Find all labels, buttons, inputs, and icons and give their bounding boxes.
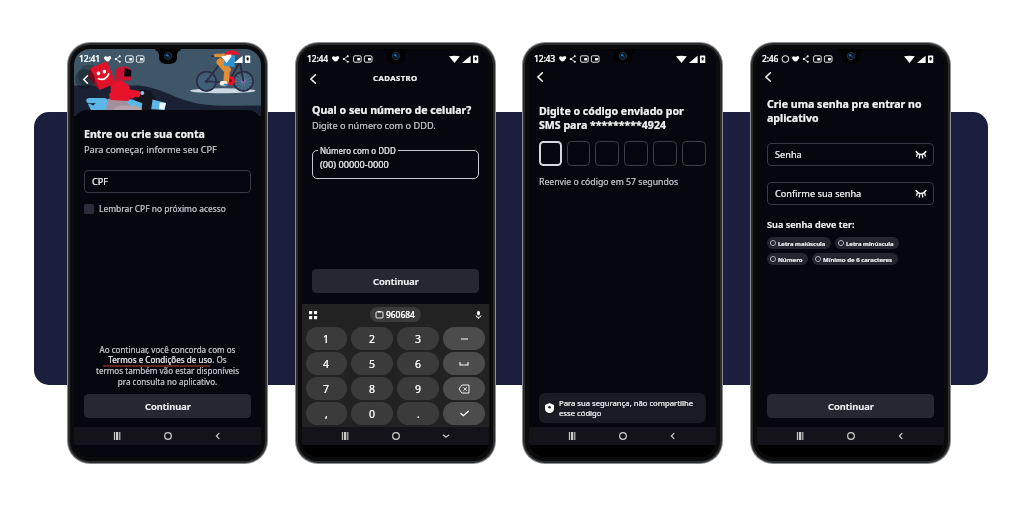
staticText: 7 (323, 382, 330, 396)
staticText: 12:41 (79, 53, 101, 65)
button[interactable]: 2 (351, 327, 393, 350)
button[interactable]: Letra maiúscula (767, 237, 831, 249)
button[interactable]: Home (615, 428, 631, 444)
staticText: Continuar (145, 400, 191, 413)
button[interactable]: Home (160, 428, 176, 444)
button[interactable]: 3 (397, 327, 439, 350)
button[interactable]: CPF (84, 170, 251, 193)
button[interactable]: 6 (397, 352, 439, 375)
staticText: CPF (92, 175, 109, 188)
button[interactable]: 1 (306, 327, 347, 350)
button[interactable]: Senha (767, 143, 934, 166)
staticText: 3 (415, 332, 422, 346)
staticText: Qual o seu número de celular? (312, 103, 472, 117)
button[interactable]: 4 (306, 352, 347, 375)
button[interactable]: Back (304, 70, 322, 88)
button[interactable]: Para sua segurança, não compartilhe esse… (539, 393, 706, 423)
button[interactable]: 9 (397, 377, 439, 400)
button[interactable]: Back (210, 428, 226, 444)
button[interactable]: , (306, 402, 347, 425)
button[interactable] (595, 141, 619, 166)
button[interactable] (312, 150, 479, 179)
staticText: Digite o código enviado por SMS para ***… (539, 104, 706, 132)
staticText: Crie uma senha pra entrar no aplicativo (767, 97, 934, 125)
button[interactable]: Recents (792, 428, 808, 444)
button[interactable]: Back (75, 69, 95, 89)
staticText: Senha (775, 148, 802, 161)
button[interactable] (539, 141, 562, 166)
staticText: CADASTRO (373, 73, 418, 84)
staticText: 1 (323, 332, 330, 346)
button[interactable] (443, 352, 485, 375)
button[interactable]: Home (388, 428, 404, 444)
staticText: (00) 00000-0000 (320, 158, 389, 171)
button[interactable] (443, 327, 485, 350)
staticText: 9 (415, 382, 422, 396)
staticText: Ao continuar, você concorda com os Termo… (84, 344, 251, 388)
button[interactable]: 960684 (376, 309, 415, 320)
staticText: Para sua segurança, não compartilhe esse… (559, 398, 700, 418)
staticText: Confirme sua senha (775, 187, 862, 200)
staticText: , (325, 407, 328, 421)
staticText: Número (778, 255, 803, 263)
staticText: Digite o número com o DDD. (312, 119, 436, 132)
button[interactable]: Back (665, 428, 681, 444)
button[interactable] (567, 141, 590, 166)
staticText: Sua senha deve ter: (767, 218, 855, 231)
staticText: Mínimo de 6 caracteres (823, 255, 893, 263)
button[interactable]: 8 (351, 377, 393, 400)
button[interactable]: Recents (564, 428, 580, 444)
button[interactable]: Continuar (767, 394, 934, 418)
button[interactable] (443, 402, 485, 425)
button[interactable]: Continuar (84, 394, 251, 418)
button[interactable]: Recents (337, 428, 353, 444)
staticText: Letra maiúscula (778, 239, 826, 247)
button[interactable]: Recents (109, 428, 125, 444)
button[interactable]: Home (843, 428, 859, 444)
button[interactable] (653, 141, 677, 166)
staticText: Reenvie o código em 57 segundos (539, 176, 679, 188)
staticText: Número com o DDD (320, 145, 396, 156)
button[interactable]: Back (759, 68, 777, 86)
staticText: Continuar (828, 400, 874, 413)
button[interactable]: Continuar (312, 269, 479, 293)
staticText: Continuar (373, 275, 419, 288)
button[interactable] (682, 141, 706, 166)
button[interactable]: Número (767, 253, 808, 265)
button[interactable]: Voice input (472, 309, 484, 321)
button[interactable]: Confirme sua senha (767, 182, 934, 205)
button[interactable]: . (397, 402, 439, 425)
button[interactable]: 0 (351, 402, 393, 425)
button[interactable]: 7 (306, 377, 347, 400)
staticText: 2 (369, 332, 376, 346)
staticText: Para começar, informe seu CPF (84, 143, 217, 156)
staticText: 5 (369, 357, 376, 371)
staticText: Lembrar CPF no próximo acesso (99, 203, 226, 214)
staticText: Letra minúscula (846, 239, 894, 247)
staticText: 12:43 (534, 53, 556, 65)
button[interactable]: Letra minúscula (835, 237, 899, 249)
button[interactable]: Switch keyboard (307, 309, 319, 321)
button[interactable]: Back (438, 428, 454, 444)
staticText: 4 (323, 357, 330, 371)
staticText: 960684 (386, 309, 415, 320)
button[interactable]: Back (531, 68, 549, 86)
button[interactable] (624, 141, 648, 166)
staticText: 8 (369, 382, 376, 396)
button[interactable]: Lembrar CPF no próximo acesso (84, 202, 226, 215)
staticText: Entre ou crie sua conta (84, 127, 205, 141)
staticText: 0 (369, 407, 376, 421)
button[interactable]: Back (893, 428, 909, 444)
staticText: 12:44 (307, 53, 329, 65)
staticText: . (417, 407, 420, 421)
button[interactable]: Mínimo de 6 caracteres (812, 253, 898, 265)
staticText: 2:46 (762, 53, 779, 65)
staticText: 6 (415, 357, 422, 371)
button[interactable]: 5 (351, 352, 393, 375)
button[interactable] (443, 377, 485, 400)
